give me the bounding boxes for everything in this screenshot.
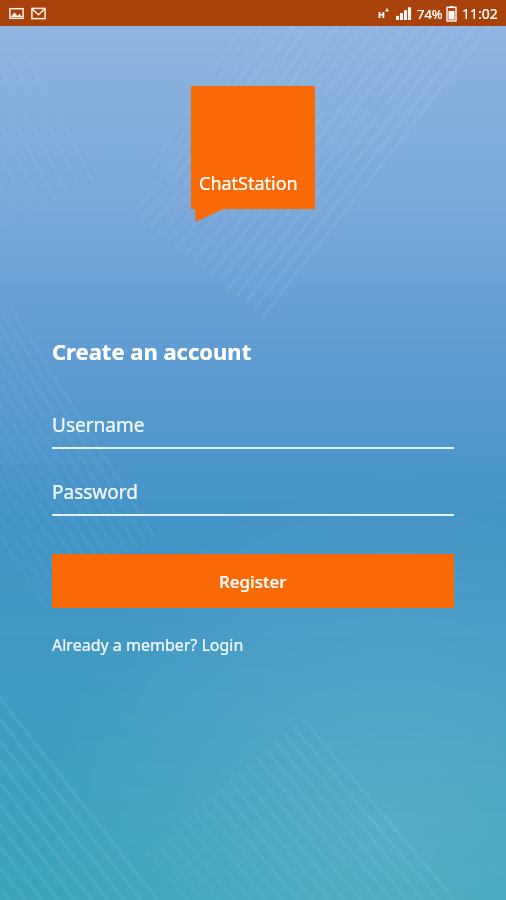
button[interactable]: Already a member? Login: [52, 634, 244, 656]
staticText: Password: [52, 479, 138, 505]
button[interactable]: Register: [52, 554, 454, 608]
staticText: ChatStation: [199, 171, 298, 196]
staticText: Register: [219, 570, 287, 593]
staticText: Username: [52, 412, 145, 438]
staticText: Already a member? Login: [52, 634, 244, 656]
button[interactable]: Password field: [52, 479, 454, 516]
staticText: 11:02: [462, 4, 498, 23]
staticText: 74%: [417, 5, 443, 23]
button[interactable]: Username field: [52, 412, 454, 449]
staticText: H: [378, 8, 385, 20]
staticText: Create an account: [52, 336, 252, 366]
staticText: +: [385, 6, 390, 16]
